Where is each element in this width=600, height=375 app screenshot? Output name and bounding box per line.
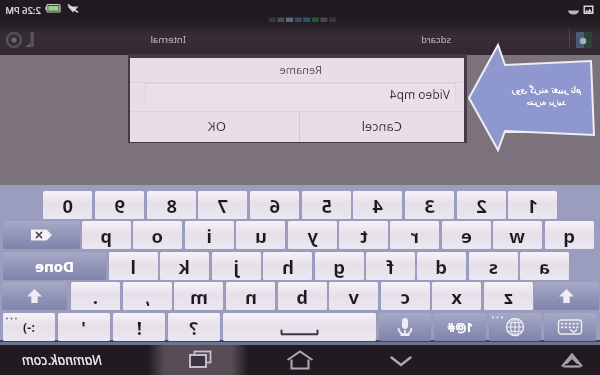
button[interactable]: c [381,282,430,310]
staticText: :-) [22,318,35,336]
button[interactable]: Collapse [560,350,584,370]
staticText: r [410,223,419,248]
button[interactable]: v [329,282,378,310]
staticText: c [400,284,410,309]
button[interactable]: 1 [508,191,557,219]
staticText: ! [136,315,142,340]
button[interactable]: Hide keyboard [544,313,596,341]
button[interactable]: Done [3,252,106,280]
staticText: i [206,223,212,248]
button[interactable]: t [339,221,388,249]
button[interactable]: 4 [353,191,402,219]
button[interactable]: . [71,282,120,310]
staticText: b [296,284,308,309]
staticText: h [281,254,294,279]
button[interactable]: f [366,252,415,280]
staticText: . [92,284,98,309]
button[interactable]: , [123,282,172,310]
button[interactable]: Shift [2,282,67,310]
staticText: u [254,223,267,248]
button[interactable]: 6 [250,191,299,219]
button[interactable]: b [278,282,327,310]
button[interactable]: 2 [457,191,506,219]
button[interactable]: 3 [405,191,454,219]
staticText: a [538,254,550,279]
button[interactable]: j [212,252,261,280]
other: No network [63,3,79,17]
staticText: d [435,254,447,279]
staticText: j [233,254,239,279]
button[interactable]: k [160,252,209,280]
button[interactable]: Back [388,354,412,368]
staticText: 3 [424,193,435,218]
button[interactable]: x [432,282,481,310]
button[interactable]: 1@# [434,313,486,341]
button[interactable]: ! [113,313,165,341]
button[interactable]: r [390,221,439,249]
staticText: q [563,223,575,248]
button[interactable]: q [545,221,594,249]
button[interactable]: n [226,282,275,310]
staticText: g [333,254,345,279]
staticText: 2 [476,193,487,218]
staticText: 4 [372,193,383,218]
button[interactable]: Recents [187,351,211,369]
button[interactable]: s [469,252,518,280]
staticText: o [151,223,163,248]
button[interactable]: u [236,221,285,249]
button[interactable]: g [315,252,364,280]
staticText: Namnak.com [21,351,102,369]
staticText: ? [189,315,198,340]
button[interactable]: Cancel [300,111,464,141]
button[interactable]: Change language [489,313,541,341]
button[interactable]: d [417,252,466,280]
staticText: OK [207,117,226,135]
staticText: n [244,284,257,309]
staticText: z [503,284,513,309]
staticText: 6 [269,193,280,218]
button[interactable]: 5 [302,191,351,219]
staticText: sdcard [421,33,451,46]
button[interactable]: 0 [43,191,92,219]
button[interactable]: :-) [3,313,55,341]
button[interactable]: Voice input [379,313,431,341]
staticText: m [189,284,208,309]
button[interactable]: Internal [124,30,212,48]
button[interactable]: sdcard [392,30,480,48]
button[interactable]: o [133,221,182,249]
button[interactable]: Shift [534,282,599,310]
button[interactable]: e [442,221,491,249]
staticText: Internal [150,33,186,46]
button[interactable]: 7 [198,191,247,219]
staticText: 0 [62,193,73,218]
button[interactable]: a [520,252,569,280]
button[interactable]: App [576,32,592,48]
button[interactable]: Sort [22,31,38,49]
button[interactable]: y [288,221,337,249]
button[interactable]: p [82,221,131,249]
staticText: Done [34,256,74,276]
button[interactable]: h [263,252,312,280]
button[interactable]: m [174,282,223,310]
staticText: Cancel [361,117,402,135]
button[interactable]: 8 [147,191,196,219]
staticText: l [130,254,136,279]
button[interactable]: ? [168,313,220,341]
button[interactable]: Space [223,313,376,341]
button[interactable]: i [185,221,234,249]
button[interactable]: Options [6,32,22,48]
button[interactable]: ' [58,313,110,341]
staticText: f [386,254,394,279]
button[interactable]: Backspace [3,221,80,249]
button[interactable]: l [109,252,158,280]
button[interactable]: Home [287,351,313,371]
staticText: 1 [527,193,538,218]
staticText: 1@# [447,319,473,335]
button[interactable]: z [484,282,533,310]
button[interactable]: w [493,221,542,249]
staticText: ' [81,315,86,340]
staticText: Rename [279,62,322,77]
button[interactable]: 9 [95,191,144,219]
button[interactable]: OK [135,111,299,141]
staticText: 2:26 PM [5,4,41,17]
